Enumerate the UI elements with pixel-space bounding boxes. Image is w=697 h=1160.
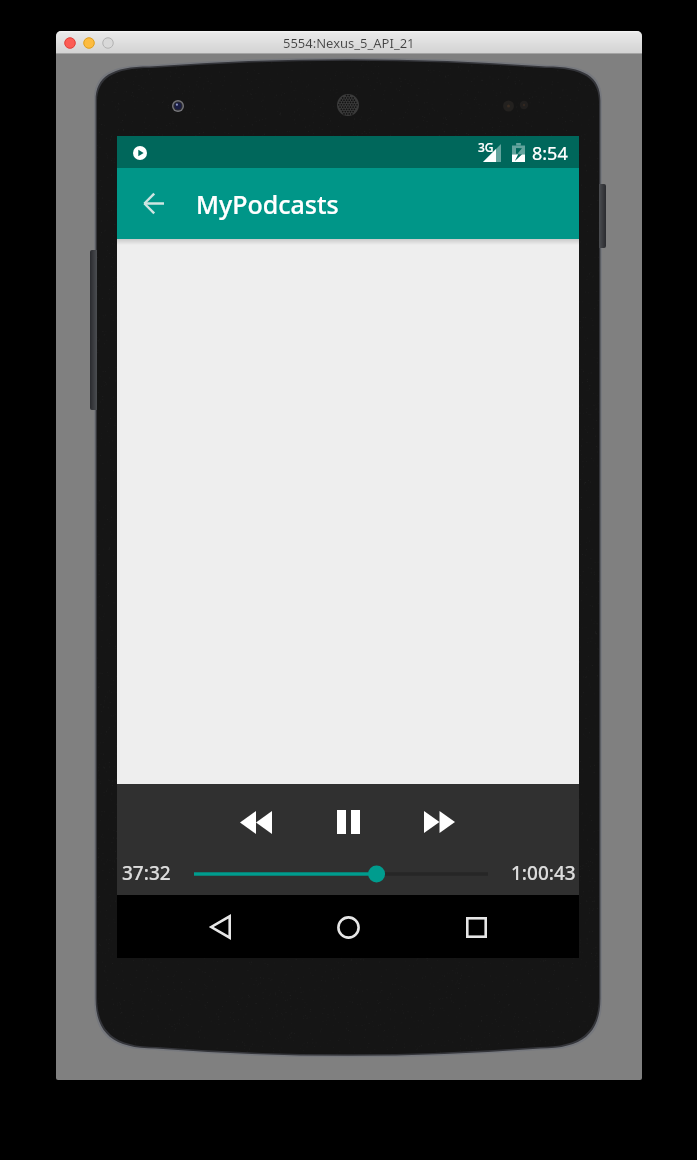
button[interactable]: Recents (452, 903, 500, 951)
staticText: 8:54 (532, 141, 568, 166)
button[interactable]: Fast forward (416, 799, 462, 845)
staticText: 5554:Nexus_5_API_21 (283, 34, 415, 52)
button[interactable]: Pause (325, 799, 371, 845)
staticText: 37:32 (122, 860, 171, 886)
staticText: MyPodcasts (196, 187, 339, 221)
button[interactable]: Rewind (233, 799, 279, 845)
staticText: 3G (478, 139, 494, 155)
button[interactable]: Back (131, 181, 175, 225)
staticText: 1:00:43 (511, 860, 576, 886)
button[interactable]: Back (196, 903, 244, 951)
button[interactable]: Home (324, 903, 372, 951)
